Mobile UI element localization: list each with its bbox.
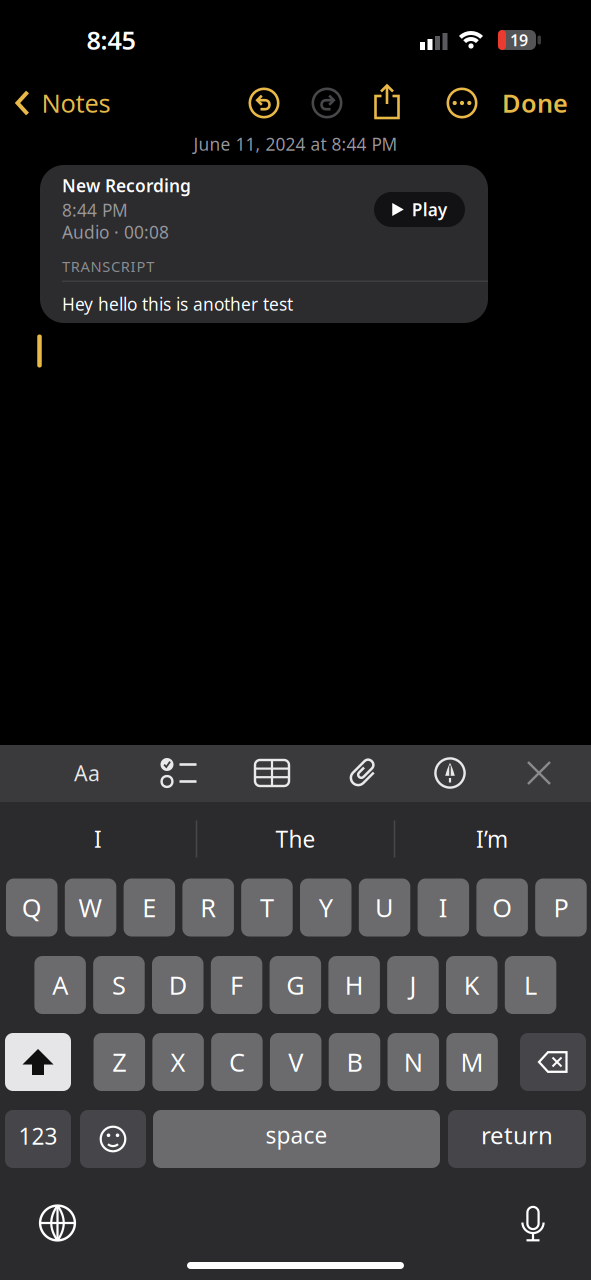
button[interactable]: 123 <box>5 1110 71 1168</box>
staticText: Done <box>502 86 568 120</box>
staticText: M <box>461 1045 484 1079</box>
staticText: L <box>524 968 537 1002</box>
button[interactable]: E <box>124 878 175 936</box>
button[interactable]: Shift <box>5 1033 71 1091</box>
button[interactable]: Z <box>93 1033 145 1091</box>
button[interactable]: Q <box>6 878 57 936</box>
button[interactable]: Delete <box>520 1033 586 1091</box>
button[interactable]: Y <box>300 878 351 936</box>
staticText: Z <box>112 1045 126 1079</box>
button[interactable]: C <box>211 1033 263 1091</box>
button[interactable]: O <box>476 878 528 936</box>
staticText: TRANSCRIPT <box>62 256 154 276</box>
button[interactable]: M <box>446 1033 498 1091</box>
button[interactable]: N <box>388 1033 439 1091</box>
staticText: return <box>481 1119 553 1151</box>
staticText: New Recording <box>62 174 191 197</box>
staticText: X <box>171 1045 186 1079</box>
staticText: Play <box>412 198 447 221</box>
button[interactable]: I <box>418 878 469 936</box>
button[interactable]: I <box>3 807 193 871</box>
button[interactable]: Next keyboard <box>38 1204 76 1242</box>
button[interactable]: Attach <box>349 755 376 790</box>
staticText: Hey hello this is another test <box>62 292 293 315</box>
button[interactable]: H <box>328 956 380 1014</box>
staticText: U <box>375 891 394 924</box>
staticText: P <box>553 891 568 924</box>
button[interactable]: G <box>270 956 321 1014</box>
button[interactable]: Table <box>255 760 289 786</box>
staticText: T <box>260 891 274 924</box>
staticText: 8:45 <box>86 23 135 57</box>
button[interactable]: Done <box>502 86 568 120</box>
staticText: Audio · 00:08 <box>62 220 169 243</box>
button[interactable]: D <box>152 956 203 1014</box>
staticText: I <box>439 891 448 924</box>
staticText: I <box>94 824 102 854</box>
button[interactable]: Play <box>374 192 465 227</box>
staticText: F <box>230 968 243 1002</box>
button[interactable]: U <box>359 878 410 936</box>
staticText: space <box>265 1120 327 1150</box>
button[interactable]: F <box>211 956 262 1014</box>
button[interactable]: Emoji <box>80 1110 146 1168</box>
staticText: Aa <box>74 759 100 787</box>
button[interactable]: Notes <box>13 86 110 120</box>
button[interactable]: I’m <box>397 807 587 871</box>
staticText: N <box>404 1045 423 1079</box>
button[interactable]: W <box>65 878 116 936</box>
button[interactable]: B <box>329 1033 380 1091</box>
button[interactable]: K <box>446 956 497 1014</box>
staticText: O <box>492 891 512 924</box>
staticText: H <box>345 968 364 1002</box>
button[interactable]: Undo <box>248 87 280 119</box>
button[interactable]: Markup <box>434 757 466 789</box>
button[interactable]: More <box>446 87 478 119</box>
button[interactable]: J <box>387 956 439 1014</box>
staticText: B <box>346 1045 362 1079</box>
button[interactable]: A <box>34 956 86 1014</box>
staticText: W <box>78 891 102 924</box>
button[interactable]: R <box>182 878 234 936</box>
button[interactable]: S <box>93 956 145 1014</box>
button[interactable]: P <box>535 878 587 936</box>
button[interactable]: Format <box>74 759 100 787</box>
button[interactable]: Share <box>372 83 402 121</box>
staticText: J <box>409 968 416 1002</box>
staticText: V <box>288 1045 303 1079</box>
staticText: R <box>200 891 216 924</box>
staticText: The <box>275 824 315 854</box>
staticText: K <box>464 968 480 1002</box>
staticText: Q <box>22 891 42 924</box>
button[interactable]: L <box>505 956 556 1014</box>
button[interactable]: Dictate <box>519 1205 547 1242</box>
staticText: June 11, 2024 at 8:44 PM <box>193 132 397 155</box>
staticText: D <box>169 968 187 1002</box>
staticText: C <box>229 1045 245 1079</box>
button[interactable]: Dismiss <box>526 760 552 786</box>
staticText: Notes <box>41 86 110 120</box>
button[interactable]: V <box>270 1033 321 1091</box>
staticText: S <box>112 968 126 1002</box>
button[interactable]: T <box>241 878 293 936</box>
button[interactable]: return <box>448 1110 586 1168</box>
staticText: E <box>142 891 156 924</box>
button[interactable]: Checklist <box>160 757 197 789</box>
staticText: 8:44 PM <box>62 198 128 221</box>
button[interactable]: space <box>153 1110 440 1168</box>
button[interactable]: Redo <box>311 87 343 119</box>
staticText: 123 <box>18 1121 57 1151</box>
button[interactable]: X <box>152 1033 204 1091</box>
staticText: Y <box>319 891 333 924</box>
staticText: G <box>286 968 304 1002</box>
staticText: I’m <box>476 824 508 854</box>
staticText: 19 <box>510 29 528 51</box>
button[interactable]: The <box>200 807 390 871</box>
staticText: A <box>52 968 68 1002</box>
